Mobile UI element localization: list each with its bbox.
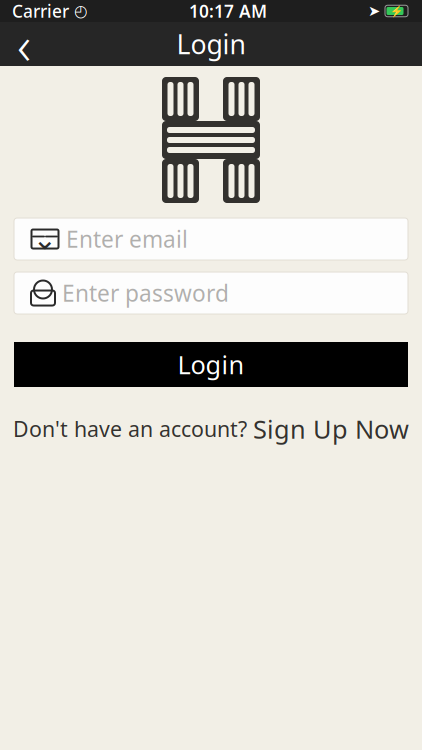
staticText: Login — [176, 26, 245, 62]
staticText: Sign Up Now — [253, 412, 409, 446]
staticText: ⌄ — [32, 222, 57, 256]
button[interactable]: Sign Up Now — [253, 412, 409, 446]
staticText: Don't have an account? — [13, 415, 247, 443]
staticText: Enter email — [66, 224, 188, 254]
staticText: ‹ — [17, 9, 31, 79]
staticText: 10:17 AM — [189, 0, 267, 22]
staticText: ◴ — [69, 2, 88, 20]
button[interactable]: Login — [14, 342, 408, 387]
staticText: ⚡ — [390, 5, 403, 17]
staticText: Carrier — [12, 0, 69, 22]
staticText: ➤ — [368, 3, 380, 19]
staticText: Enter password — [62, 278, 229, 308]
button[interactable]: Back — [0, 22, 48, 66]
staticText: Login — [177, 348, 244, 381]
